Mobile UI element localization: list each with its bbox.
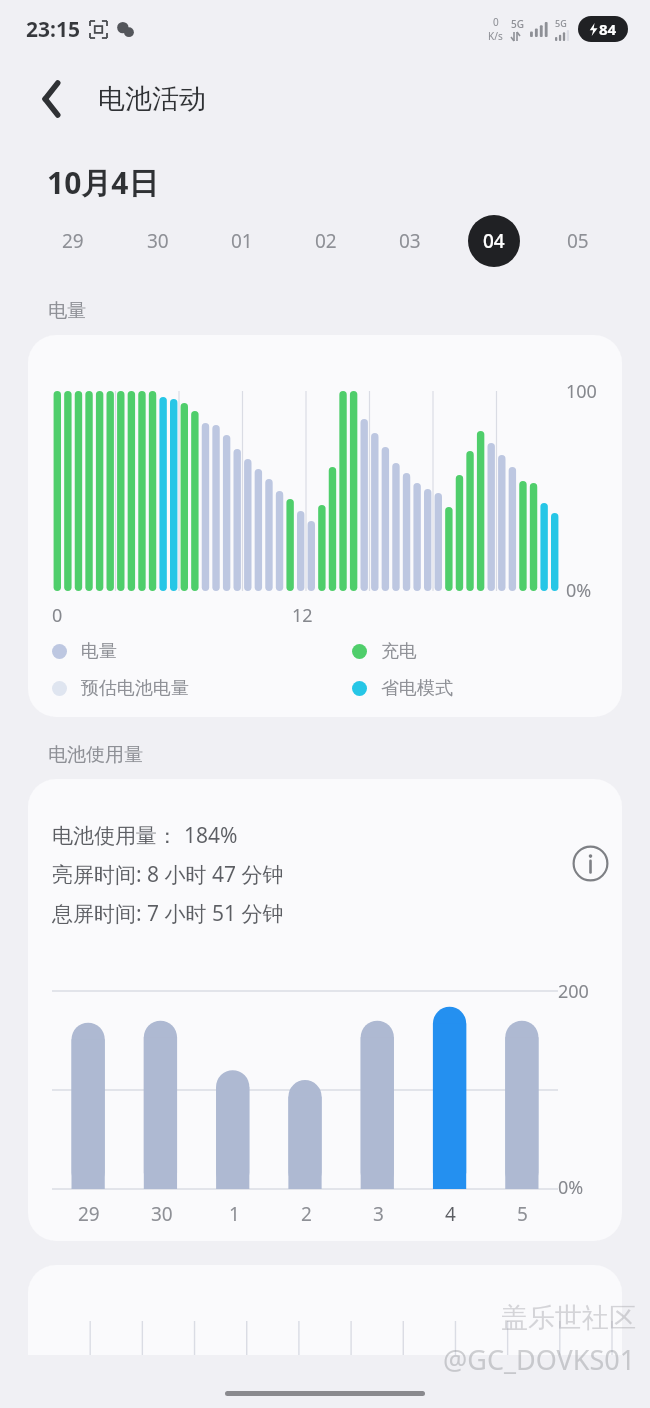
- staticText: 亮屏时间: 8 小时 47 分钟: [52, 860, 284, 889]
- staticText: 30: [147, 228, 169, 254]
- staticText: 息屏时间: 7 小时 51 分钟: [52, 899, 284, 928]
- staticText: 4: [445, 1201, 456, 1227]
- staticText: 01: [231, 228, 253, 254]
- staticText: 05: [567, 228, 589, 254]
- staticText: 0: [52, 603, 63, 628]
- staticText: 23:15: [26, 15, 80, 44]
- button[interactable]: 02: [300, 215, 352, 267]
- staticText: 12: [292, 603, 313, 628]
- button[interactable]: 03: [384, 215, 436, 267]
- button[interactable]: 04: [468, 215, 520, 267]
- staticText: 省电模式: [381, 677, 453, 700]
- staticText: 5G: [511, 17, 524, 31]
- staticText: 5: [517, 1201, 528, 1227]
- staticText: 29: [62, 228, 84, 254]
- staticText: K/s: [488, 29, 503, 43]
- staticText: 电池活动: [98, 82, 206, 116]
- staticText: 2: [301, 1201, 312, 1227]
- staticText: 电量: [48, 299, 86, 323]
- staticText: 电量: [81, 640, 117, 663]
- staticText: 10月4日: [47, 162, 159, 203]
- staticText: 200: [558, 979, 589, 1004]
- button[interactable]: Back: [24, 71, 80, 127]
- staticText: 5G: [555, 17, 567, 29]
- staticText: 184%: [184, 821, 238, 850]
- staticText: 03: [399, 228, 421, 254]
- staticText: 84: [599, 19, 617, 39]
- button[interactable]: 29: [47, 215, 99, 267]
- staticText: 04: [483, 228, 505, 254]
- staticText: 1: [229, 1201, 240, 1227]
- button[interactable]: 05: [552, 215, 604, 267]
- staticText: 0%: [566, 578, 592, 603]
- staticText: 预估电池电量: [81, 677, 189, 700]
- staticText: 电池使用量：: [52, 823, 178, 849]
- staticText: 0: [493, 15, 499, 29]
- staticText: 3: [373, 1201, 384, 1227]
- staticText: 盖乐世社区: [501, 1301, 636, 1335]
- staticText: 充电: [381, 640, 417, 663]
- staticText: 29: [78, 1201, 100, 1227]
- staticText: 30: [151, 1201, 173, 1227]
- staticText: 电池使用量: [48, 743, 143, 767]
- staticText: 02: [315, 228, 337, 254]
- button[interactable]: 30: [132, 215, 184, 267]
- staticText: 100: [566, 379, 597, 404]
- button[interactable]: Info: [562, 835, 618, 891]
- staticText: 0%: [558, 1175, 584, 1200]
- staticText: @GC_DOVKS01: [443, 1341, 636, 1378]
- button[interactable]: 01: [216, 215, 268, 267]
